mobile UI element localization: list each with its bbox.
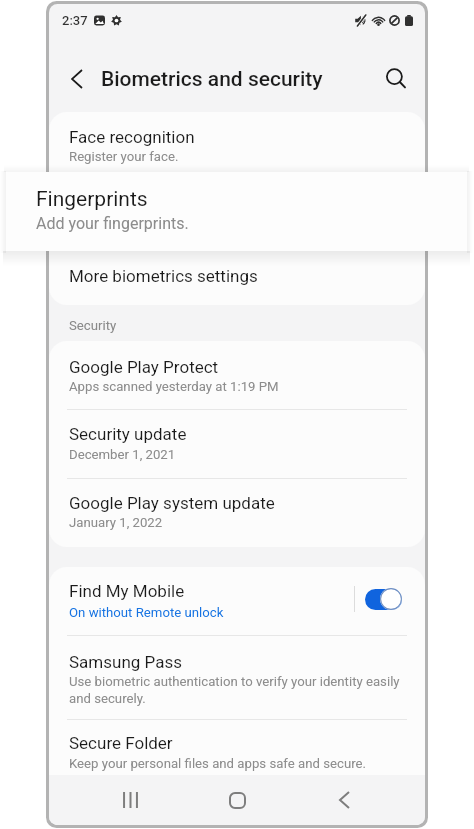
staticText: Biometrics and security (101, 67, 323, 92)
staticText: Google Play Protect (69, 357, 219, 377)
staticText: December 1, 2021 (69, 447, 412, 462)
staticText: Face recognition (69, 127, 195, 147)
button[interactable]: More biometrics settings (49, 241, 425, 305)
button[interactable]: Search (374, 57, 418, 101)
button[interactable]: Home (207, 783, 267, 817)
staticText: Keep your personal files and apps safe a… (69, 756, 412, 771)
staticText: Security (69, 318, 117, 333)
button[interactable]: Navigate up (57, 59, 97, 99)
button[interactable]: Back (314, 783, 374, 817)
button[interactable]: Face recognition (49, 112, 425, 176)
staticText: Add your fingerprints. (36, 214, 189, 233)
staticText: Add your fingerprints. (69, 213, 412, 228)
button[interactable]: Samsung Pass (49, 636, 425, 720)
staticText: 2:37 (62, 13, 88, 28)
staticText: Google Play system update (69, 493, 275, 513)
staticText: Apps scanned yesterday at 1:19 PM (69, 379, 412, 394)
button[interactable]: Recent apps (100, 783, 160, 817)
staticText: On without Remote unlock (69, 605, 412, 620)
staticText: Samsung Pass (69, 652, 182, 672)
staticText: More biometrics settings (69, 266, 258, 286)
staticText: Find My Mobile (69, 581, 185, 601)
staticText: Fingerprints (69, 191, 160, 211)
staticText: Use biometric authentication to verify y… (69, 674, 412, 706)
button[interactable]: Find My Mobile, on (365, 588, 402, 610)
staticText: Security update (69, 424, 187, 444)
button[interactable]: Find My Mobile (49, 567, 425, 635)
staticText: Register your face. (69, 149, 412, 164)
button[interactable]: Secure Folder (49, 720, 425, 790)
staticText: Secure Folder (69, 733, 173, 753)
button[interactable]: Security update (49, 410, 425, 478)
button[interactable]: Google Play system update (49, 479, 425, 547)
button[interactable]: Fingerprints (49, 176, 425, 240)
button[interactable]: Google Play Protect (49, 341, 425, 409)
staticText: January 1, 2022 (69, 515, 412, 530)
staticText: Fingerprints (36, 187, 148, 212)
button[interactable]: Fingerprints (6, 172, 467, 251)
